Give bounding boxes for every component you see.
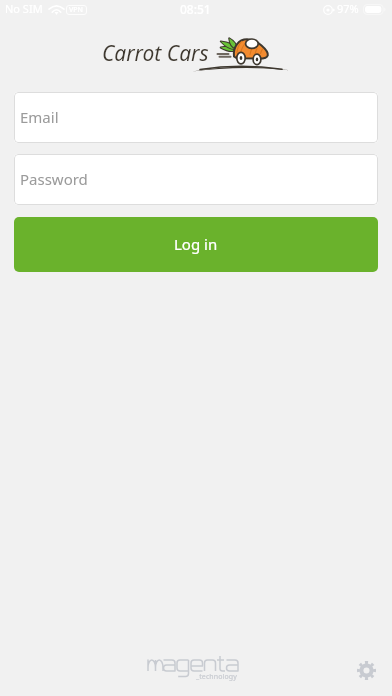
button[interactable]: Log in	[14, 217, 378, 272]
button[interactable]: Settings	[349, 653, 384, 688]
button[interactable]: Email	[14, 92, 378, 143]
staticText: VPN	[69, 5, 84, 15]
staticText: Carrot Cars	[102, 39, 209, 68]
staticText: Password	[20, 169, 88, 189]
staticText: No SIM	[5, 1, 43, 16]
staticText: Log in	[174, 234, 218, 254]
staticText: Email	[20, 107, 59, 127]
staticText: 08:51	[180, 1, 211, 17]
button[interactable]: Password	[14, 154, 378, 205]
staticText: 97%	[337, 1, 359, 16]
staticText: _technology	[196, 672, 237, 682]
